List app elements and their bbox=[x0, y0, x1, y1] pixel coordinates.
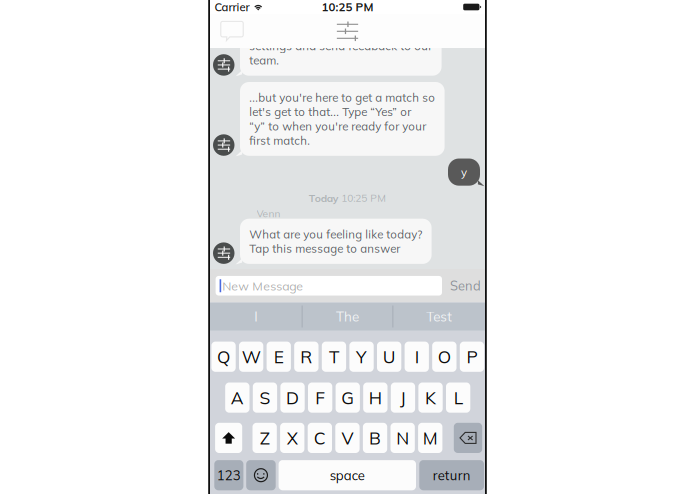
staticText: I bbox=[254, 308, 257, 325]
staticText: P bbox=[466, 346, 477, 368]
staticText: return bbox=[433, 467, 471, 483]
staticText: 10:25 PM bbox=[321, 0, 373, 14]
staticText: S bbox=[259, 387, 270, 408]
button[interactable]: 123 bbox=[214, 460, 243, 490]
staticText: New Message bbox=[222, 278, 303, 293]
staticText: R bbox=[300, 346, 312, 368]
button[interactable]: B bbox=[363, 423, 387, 453]
button[interactable]: I bbox=[405, 342, 429, 372]
button[interactable]: J bbox=[391, 382, 415, 413]
staticText: T bbox=[329, 346, 339, 368]
button[interactable]: D bbox=[280, 382, 305, 413]
staticText: first match. bbox=[249, 133, 310, 148]
button[interactable]: O bbox=[432, 342, 456, 372]
button[interactable]: L bbox=[446, 382, 470, 413]
button[interactable]: U bbox=[377, 342, 401, 372]
button[interactable]: Emoji bbox=[246, 460, 276, 490]
staticText: settings and send feedback to our bbox=[249, 39, 432, 53]
staticText: Z bbox=[260, 427, 270, 449]
button[interactable]: W bbox=[239, 342, 263, 372]
staticText: Y bbox=[356, 346, 367, 368]
staticText: 10:25 PM bbox=[341, 192, 386, 204]
staticText: B bbox=[369, 427, 381, 449]
staticText: space bbox=[330, 467, 365, 483]
staticText: J bbox=[400, 387, 406, 408]
button[interactable]: N bbox=[390, 423, 415, 453]
staticText: O bbox=[438, 346, 451, 368]
staticText: Q bbox=[217, 346, 230, 368]
staticText: M bbox=[423, 427, 438, 449]
staticText: N bbox=[396, 427, 409, 449]
staticText: V bbox=[341, 427, 353, 449]
button[interactable]: Q bbox=[211, 342, 236, 372]
staticText: The bbox=[336, 308, 359, 325]
button[interactable]: H bbox=[363, 382, 387, 413]
button[interactable]: return bbox=[419, 460, 484, 490]
button[interactable]: A bbox=[225, 382, 249, 413]
staticText: y bbox=[461, 165, 467, 179]
staticText: W bbox=[242, 346, 261, 368]
button[interactable]: E bbox=[267, 342, 291, 372]
staticText: Tap this message to answer bbox=[249, 241, 400, 256]
staticText: 123 bbox=[217, 467, 241, 483]
staticText: Send bbox=[450, 278, 481, 294]
button[interactable]: Delete bbox=[454, 423, 482, 453]
staticText: Carrier bbox=[215, 0, 250, 14]
staticText: L bbox=[454, 387, 463, 408]
staticText: X bbox=[287, 427, 298, 449]
button[interactable]: I bbox=[210, 302, 302, 330]
button[interactable]: Z bbox=[252, 423, 277, 453]
staticText: Today bbox=[309, 191, 339, 205]
staticText: D bbox=[286, 387, 299, 408]
button[interactable]: V bbox=[335, 423, 360, 453]
button[interactable]: P bbox=[460, 342, 484, 372]
staticText: G bbox=[341, 387, 354, 408]
staticText: Venn bbox=[256, 207, 280, 220]
staticText: let's get to that... Type “Yes” or bbox=[249, 105, 411, 119]
button[interactable]: M bbox=[418, 423, 442, 453]
button[interactable]: The bbox=[302, 302, 393, 330]
button[interactable]: Shift bbox=[215, 423, 242, 453]
staticText: E bbox=[274, 346, 284, 368]
staticText: “y” to when you're ready for your bbox=[249, 119, 426, 133]
button[interactable]: Test bbox=[393, 302, 485, 330]
staticText: ...but you're here to get a match so bbox=[249, 90, 435, 105]
button[interactable]: space bbox=[279, 460, 416, 490]
staticText: U bbox=[383, 346, 396, 368]
button[interactable]: C bbox=[308, 423, 332, 453]
button[interactable]: K bbox=[418, 382, 443, 413]
staticText: H bbox=[369, 387, 382, 408]
button[interactable]: T bbox=[322, 342, 346, 372]
button[interactable]: X bbox=[280, 423, 304, 453]
button[interactable]: G bbox=[336, 382, 360, 413]
staticText: team. bbox=[249, 53, 279, 67]
staticText: Test bbox=[426, 308, 452, 325]
button[interactable]: F bbox=[308, 382, 332, 413]
staticText: F bbox=[315, 387, 325, 408]
button[interactable]: S bbox=[253, 382, 277, 413]
button[interactable]: Y bbox=[349, 342, 374, 372]
staticText: A bbox=[231, 387, 244, 408]
staticText: K bbox=[425, 387, 436, 408]
staticText: C bbox=[314, 427, 326, 449]
button[interactable]: R bbox=[294, 342, 318, 372]
staticText: What are you feeling like today? bbox=[249, 227, 422, 241]
button[interactable]: Conversations bbox=[214, 14, 250, 48]
button[interactable]: Send bbox=[450, 269, 485, 302]
staticText: I bbox=[415, 346, 419, 368]
